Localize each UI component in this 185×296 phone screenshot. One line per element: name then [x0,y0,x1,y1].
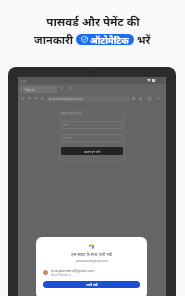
staticText: 9:41 [20,79,27,84]
button[interactable]: Sign in [22,86,55,93]
button[interactable]: जारी रखें [43,281,140,288]
staticText: इस साइट के साथ जारी रखें [71,252,112,258]
button[interactable]: More options [157,97,160,100]
staticText: ईमेल [63,123,69,127]
staticText: पासवर्ड [63,136,72,140]
button[interactable]: Reload [41,97,44,100]
button[interactable]: ईमेल [63,121,121,129]
staticText: ऑटोमैटिक [90,34,129,45]
staticText: साइन इन करें [84,149,101,154]
button[interactable]: Home [21,97,24,100]
button[interactable]: Profile [148,97,151,100]
button[interactable]: साइन इन करें [61,147,123,155]
button[interactable]: nisa.plonders@gmail.com [43,268,140,277]
staticText: भरें [137,32,151,47]
staticText: nisa.plonders@gmail.com [51,268,95,273]
staticText: जानकारी [34,32,74,47]
staticText: passwordsignup.com [52,97,84,101]
button[interactable]: passwordsignup.com [47,96,130,102]
button[interactable]: Forward [34,97,37,100]
staticText: passwordsignup.com [76,259,108,263]
button[interactable]: Bookmark [132,97,135,100]
button[interactable]: पासवर्ड [63,134,121,142]
button[interactable]: Downloads [139,97,142,100]
button[interactable]: New tab [68,86,72,90]
staticText: साइन इन करें [61,111,82,117]
staticText: जारी रखें [86,282,98,287]
staticText: Sign in [25,88,36,92]
button[interactable]: Back [28,97,31,100]
staticText: Nisa Plonders [51,273,71,277]
button[interactable]: Close tab [60,86,64,90]
staticText: पासवर्ड और पेमेंट की [46,14,140,30]
